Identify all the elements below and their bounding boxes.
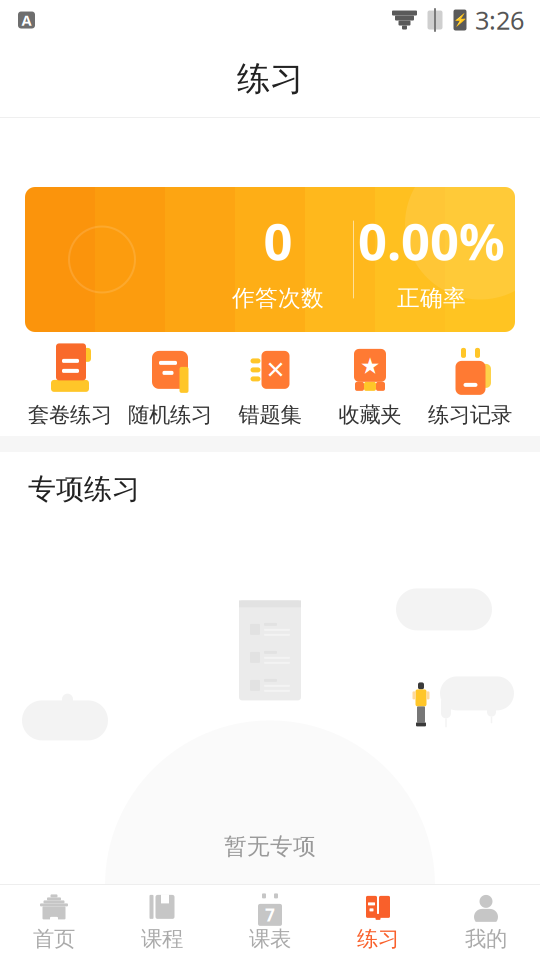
staticText: 练习记录	[428, 402, 512, 428]
staticText: ★	[360, 353, 380, 379]
button[interactable]: ✕	[220, 346, 320, 430]
staticText: 0.00%	[358, 207, 505, 274]
staticText: 随机练习	[128, 402, 212, 428]
staticText: 作答次数	[232, 284, 324, 312]
staticText: 课程	[141, 926, 183, 952]
staticText: ⚡	[452, 13, 467, 27]
staticText: ✕	[265, 356, 285, 383]
button[interactable]: 首页	[0, 886, 108, 958]
staticText: 首页	[33, 926, 75, 952]
button[interactable]: 随机练习	[120, 346, 220, 430]
button[interactable]: ★	[320, 346, 420, 430]
staticText: 暂无专项	[224, 832, 316, 860]
button[interactable]: 课程	[108, 886, 216, 958]
button[interactable]: 我的	[432, 886, 540, 958]
staticText: 7	[265, 903, 275, 926]
staticText: 0	[263, 207, 292, 274]
staticText: 收藏夹	[338, 402, 401, 428]
staticText: 练习	[237, 58, 303, 99]
button[interactable]: 练习	[324, 886, 432, 958]
button[interactable]: 7	[216, 886, 324, 958]
staticText: 课表	[249, 926, 291, 952]
staticText: 错题集	[238, 402, 301, 428]
staticText: 3:26	[475, 3, 524, 37]
staticText: 练习	[357, 926, 399, 952]
staticText: 我的	[465, 926, 507, 952]
staticText: 套卷练习	[28, 402, 112, 428]
staticText: 专项练习	[28, 472, 140, 506]
staticText: A	[21, 10, 31, 30]
staticText: 正确率	[397, 284, 466, 312]
button[interactable]: 套卷练习	[20, 346, 120, 430]
button[interactable]: 练习记录	[420, 346, 520, 430]
